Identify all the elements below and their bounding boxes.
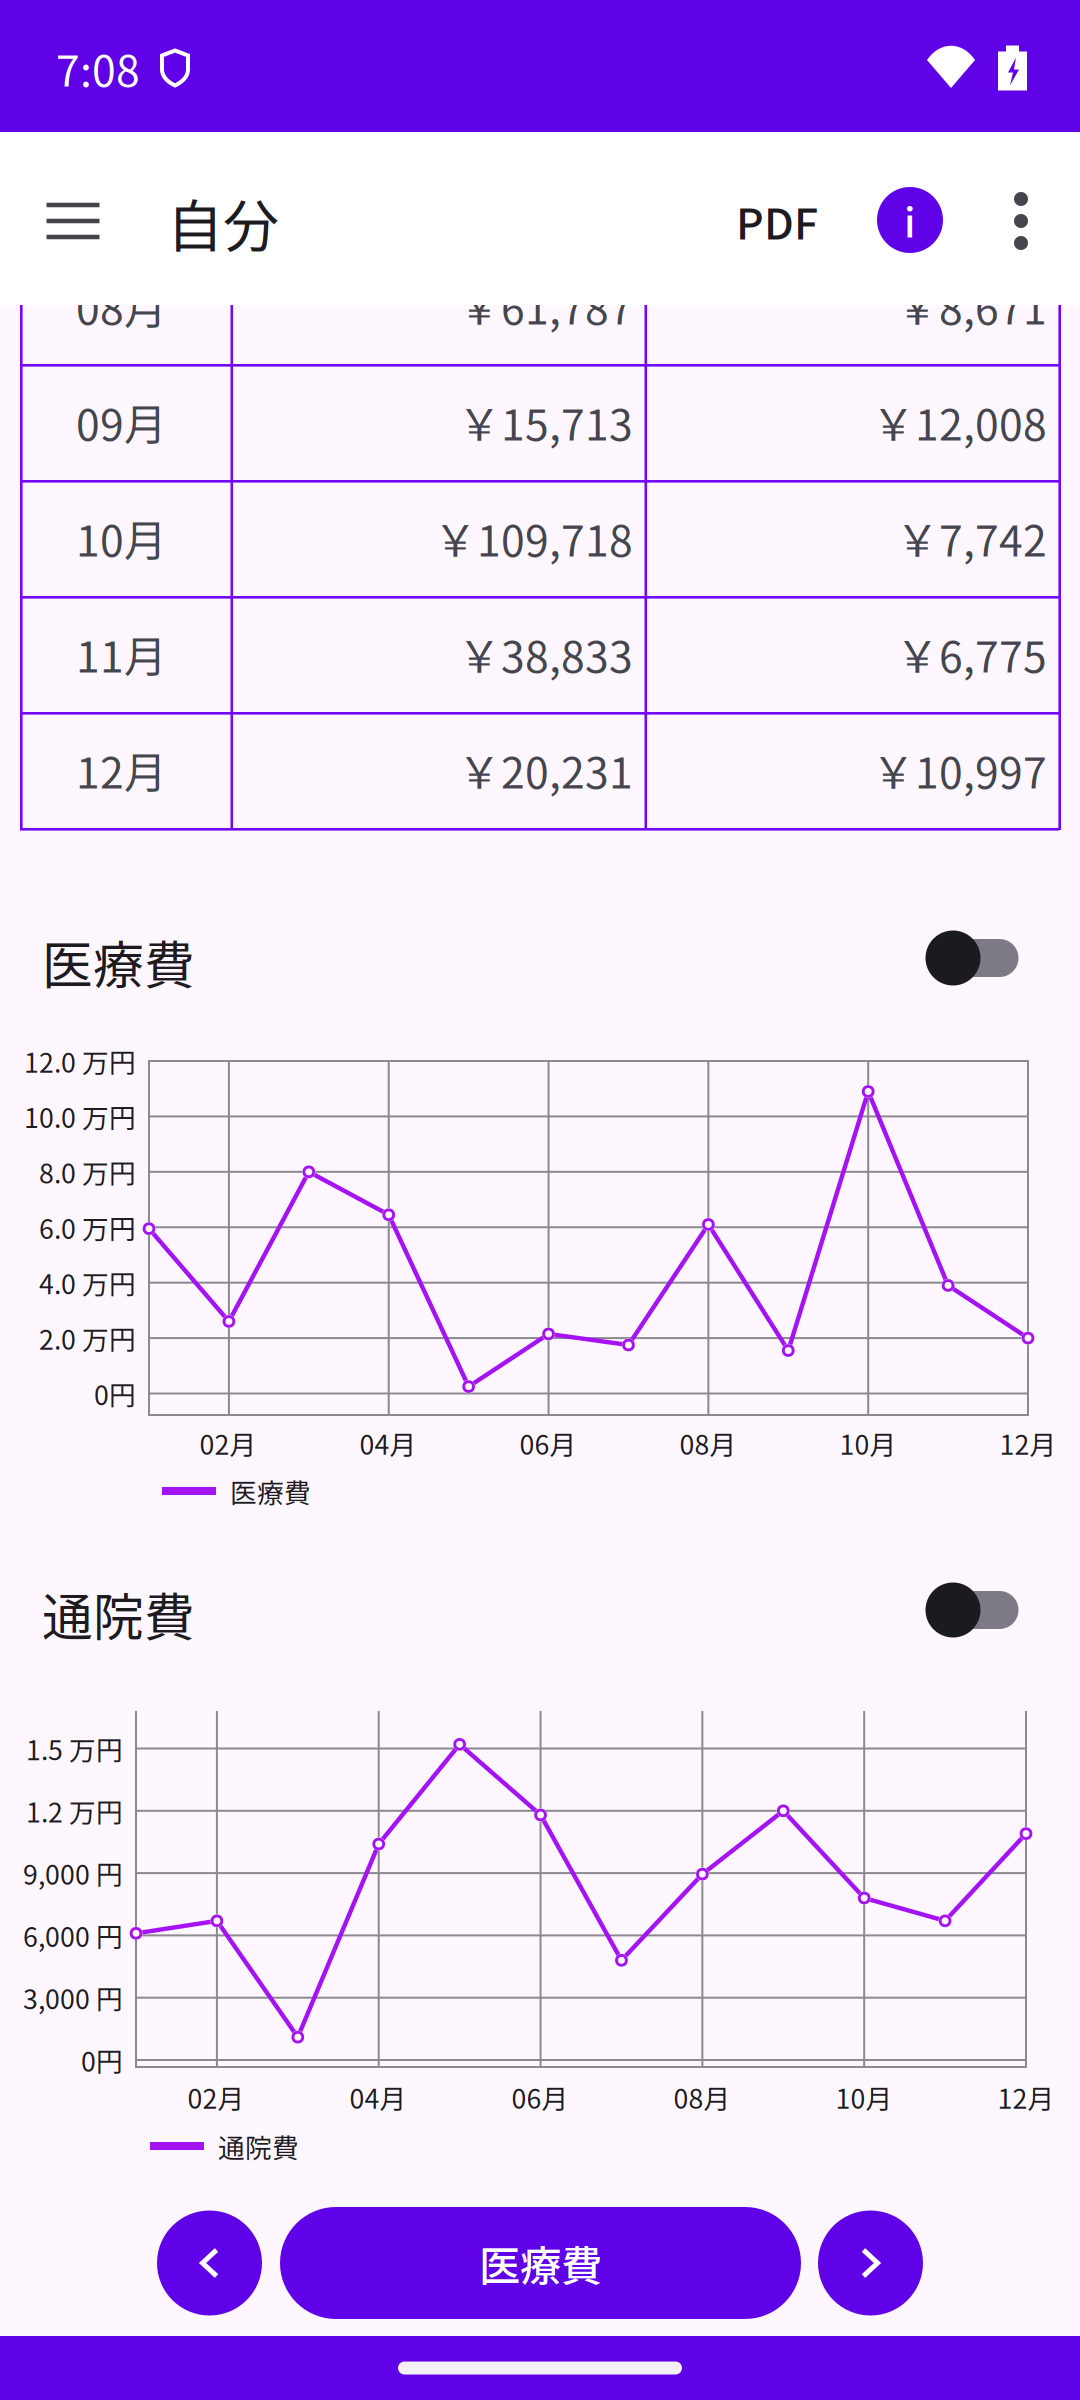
staticText: 0円 xyxy=(94,1374,136,1413)
staticText: 0円 xyxy=(81,2041,123,2079)
button[interactable]: Info xyxy=(860,170,960,270)
staticText: 医療費 xyxy=(230,1472,311,1510)
staticText: ￥6,775 xyxy=(896,623,1047,685)
staticText: 医療費 xyxy=(42,925,195,999)
button[interactable]: More options xyxy=(976,171,1066,271)
button[interactable]: PDF xyxy=(707,171,847,271)
staticText: 12月 xyxy=(999,1424,1056,1462)
staticText: ￥10,997 xyxy=(872,739,1047,801)
staticText: 06月 xyxy=(519,1424,576,1462)
staticText: i xyxy=(904,191,916,249)
staticText: 8.0 万円 xyxy=(39,1152,136,1191)
staticText: 10.0 万円 xyxy=(24,1097,136,1136)
staticText: ￥8,671 xyxy=(896,275,1047,337)
staticText: 7:08 xyxy=(56,37,140,99)
staticText: 4.0 万円 xyxy=(39,1263,136,1302)
staticText: 04月 xyxy=(359,1424,416,1462)
button[interactable]: Toggle graph xyxy=(925,929,1018,987)
staticText: 04月 xyxy=(349,2078,406,2116)
staticText: 1.2 万円 xyxy=(26,1791,123,1830)
staticText: 3,000 円 xyxy=(23,1978,123,2017)
staticText: ￥7,742 xyxy=(896,507,1047,569)
staticText: ￥38,833 xyxy=(458,623,633,685)
staticText: ￥61,787 xyxy=(458,275,633,337)
staticText: 12.0 万円 xyxy=(24,1042,136,1080)
staticText: 12月 xyxy=(997,2078,1054,2116)
staticText: 10月 xyxy=(839,1424,896,1462)
staticText: 10月 xyxy=(835,2078,892,2116)
button[interactable]: Menu xyxy=(23,171,123,271)
staticText: 08月 xyxy=(673,2078,730,2116)
staticText: 10月 xyxy=(76,507,167,569)
staticText: 6.0 万円 xyxy=(39,1208,136,1247)
staticText: 02月 xyxy=(187,2078,244,2116)
staticText: 通院費 xyxy=(218,2127,299,2165)
staticText: 12月 xyxy=(76,739,167,801)
staticText: 1.5 万円 xyxy=(26,1729,123,1768)
staticText: 9,000 円 xyxy=(23,1854,123,1892)
staticText: 6,000 円 xyxy=(23,1916,123,1955)
staticText: 06月 xyxy=(511,2078,568,2116)
staticText: 通院費 xyxy=(42,1577,195,1651)
button[interactable]: Toggle graph xyxy=(925,1581,1018,1639)
staticText: 2.0 万円 xyxy=(39,1319,136,1357)
staticText: ￥109,718 xyxy=(434,507,633,569)
button[interactable]: Previous xyxy=(157,2207,262,2319)
staticText: 自分 xyxy=(167,181,279,263)
staticText: 08月 xyxy=(679,1424,736,1462)
staticText: 09月 xyxy=(76,391,167,453)
staticText: 医療費 xyxy=(479,2233,602,2293)
staticText: 08月 xyxy=(76,275,167,337)
button[interactable]: Next xyxy=(818,2207,923,2319)
staticText: PDF xyxy=(736,190,818,252)
staticText: ￥15,713 xyxy=(458,391,633,453)
staticText: ￥12,008 xyxy=(872,391,1047,453)
button[interactable]: 医療費 xyxy=(280,2207,801,2319)
staticText: ￥20,231 xyxy=(458,739,633,801)
staticText: 02月 xyxy=(199,1424,256,1462)
staticText: 11月 xyxy=(76,623,167,685)
